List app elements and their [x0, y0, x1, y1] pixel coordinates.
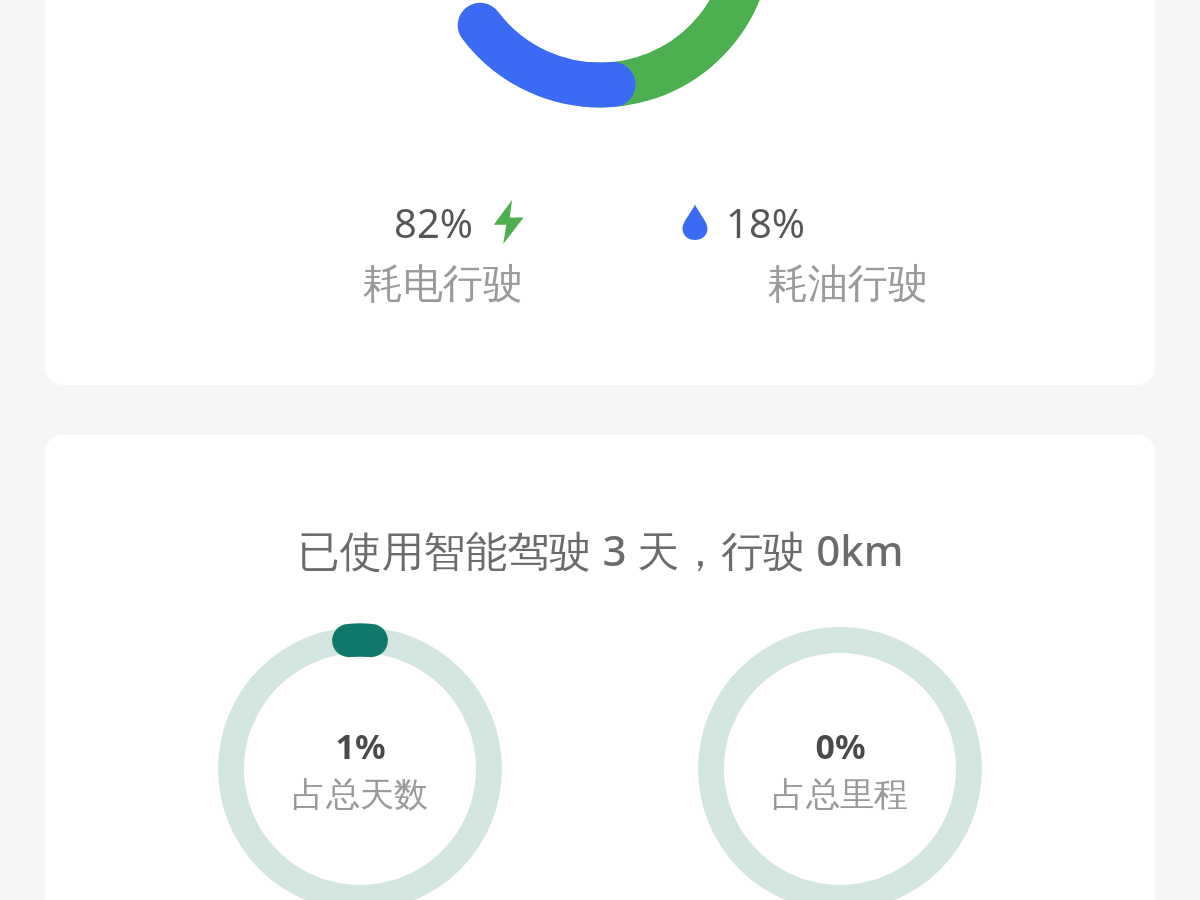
button[interactable]: 已使用智能驾驶 3 天，行驶 0km [45, 435, 1155, 900]
other: Fuel [680, 200, 710, 244]
staticText: 耗油行驶 [768, 258, 928, 308]
staticText: 0% [815, 723, 866, 769]
staticText: 占总里程 [772, 773, 908, 816]
staticText: 占总天数 [292, 773, 428, 816]
button[interactable]: 82% [45, 0, 1155, 385]
staticText: 82% [394, 195, 473, 249]
other: Electric [491, 200, 525, 244]
staticText: 耗电行驶 [363, 258, 523, 308]
staticText: 已使用智能驾驶 3 天，行驶 0km [297, 521, 904, 578]
button[interactable]: 0% [698, 627, 982, 900]
staticText: 18% [726, 195, 805, 249]
button[interactable]: 1% [218, 627, 502, 900]
staticText: 1% [335, 723, 386, 769]
